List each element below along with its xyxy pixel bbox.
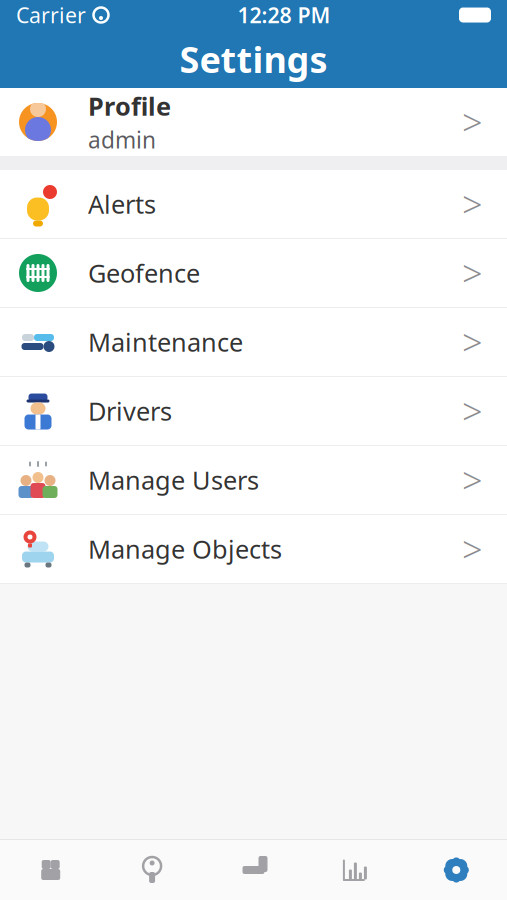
button[interactable]: Home	[0, 840, 101, 900]
button[interactable]: Drivers	[0, 377, 507, 445]
staticText: Carrier	[16, 1, 86, 29]
button[interactable]: Alerts	[0, 170, 507, 238]
staticText: >	[462, 456, 483, 504]
staticText: Manage Objects	[88, 532, 282, 566]
staticText: >	[462, 98, 483, 146]
staticText: 12:28 PM	[237, 1, 330, 29]
staticText: admin	[88, 125, 156, 155]
staticText: Geofence	[88, 256, 200, 290]
staticText: Drivers	[88, 394, 172, 428]
staticText: Alerts	[88, 187, 156, 221]
button[interactable]: Profile	[0, 88, 507, 156]
staticText: >	[462, 387, 483, 435]
staticText: >	[462, 249, 483, 297]
button[interactable]: Maintenance	[0, 308, 507, 376]
button[interactable]: Geofence	[0, 239, 507, 307]
button[interactable]: Manage Users	[0, 446, 507, 514]
staticText: Settings	[179, 35, 327, 83]
staticText: >	[462, 525, 483, 573]
staticText: Profile	[88, 89, 171, 123]
button[interactable]: Places	[101, 840, 203, 900]
button[interactable]: Manage Objects	[0, 515, 507, 583]
staticText: >	[462, 318, 483, 366]
button[interactable]: Track	[203, 840, 304, 900]
button[interactable]: Reports	[304, 840, 406, 900]
staticText: Maintenance	[88, 325, 243, 359]
staticText: Manage Users	[88, 463, 259, 497]
staticText: >	[462, 180, 483, 228]
button[interactable]: Settings	[406, 840, 507, 900]
